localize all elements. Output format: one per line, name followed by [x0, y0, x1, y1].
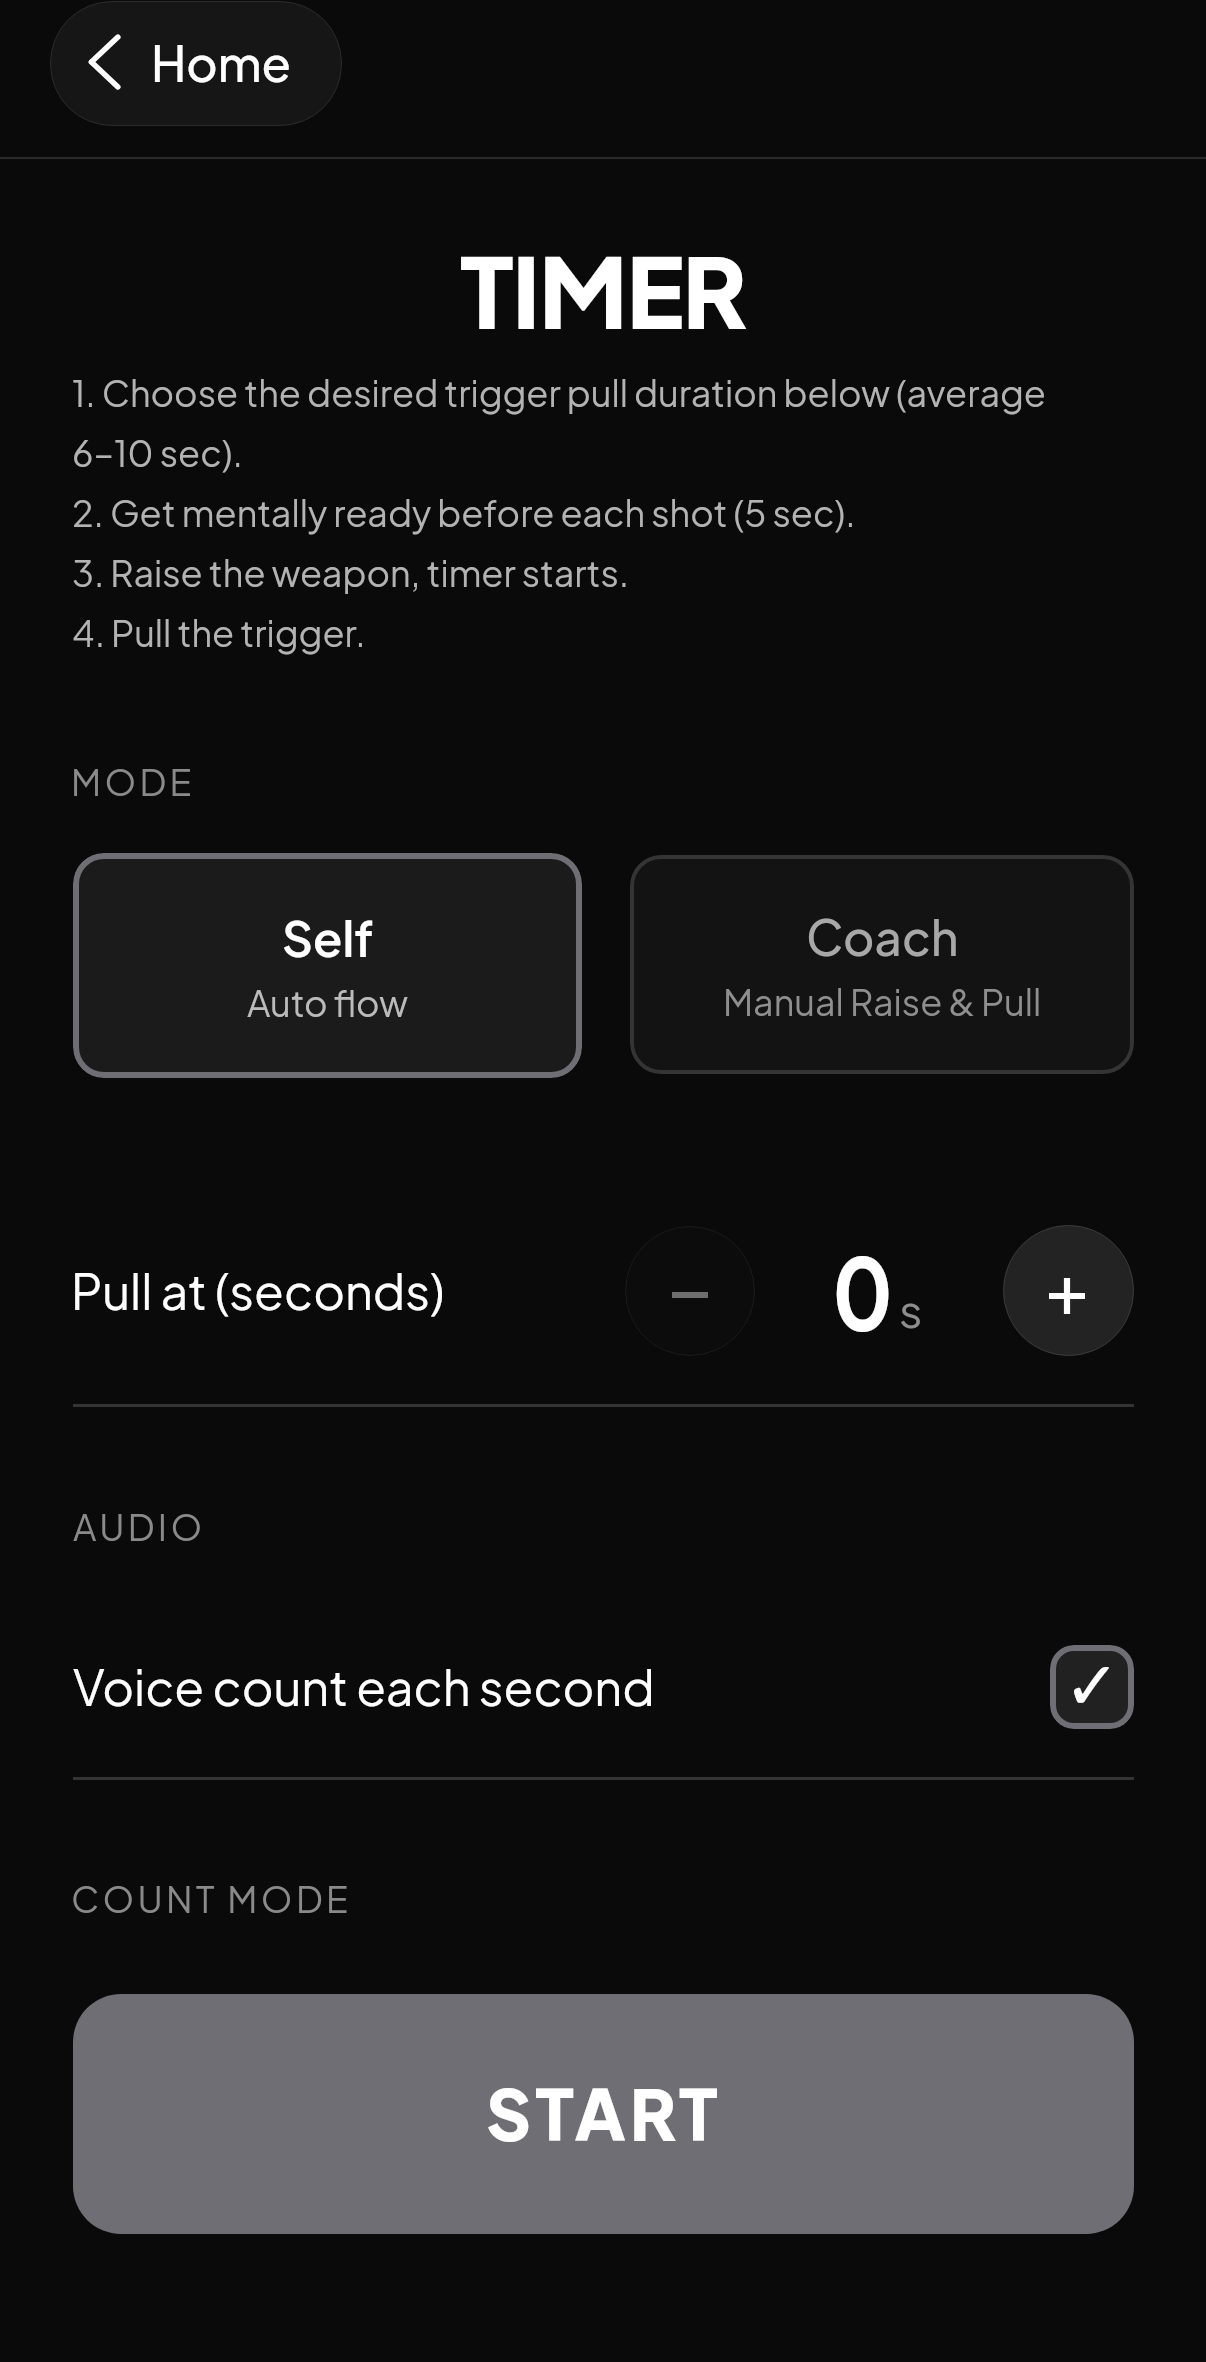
- button[interactable]: Increase: [1003, 1225, 1134, 1356]
- staticText: Home: [151, 32, 291, 92]
- staticText: Pull at (seconds): [71, 1260, 445, 1321]
- staticText: 0: [832, 1229, 894, 1352]
- button[interactable]: Home: [50, 1, 342, 126]
- staticText: ✓: [1064, 1647, 1121, 1725]
- button[interactable]: Voice count each second: [73, 1645, 1134, 1729]
- staticText: START: [486, 2068, 722, 2156]
- staticText: Coach: [806, 906, 959, 966]
- staticText: TIMER: [0, 228, 1206, 350]
- staticText: 1. Choose the desired trigger pull durat…: [72, 370, 1046, 655]
- button[interactable]: Coach: [630, 855, 1134, 1074]
- button[interactable]: Decrease: [625, 1226, 755, 1356]
- staticText: Voice count each second: [73, 1656, 655, 1717]
- button[interactable]: Self: [73, 853, 582, 1078]
- staticText: COUNT MODE: [71, 1876, 352, 1921]
- staticText: s: [899, 1280, 923, 1338]
- button[interactable]: START: [73, 1994, 1134, 2234]
- staticText: AUDIO: [73, 1504, 206, 1549]
- staticText: MODE: [71, 759, 196, 804]
- staticText: Auto flow: [247, 980, 408, 1025]
- staticText: Manual Raise & Pull: [723, 979, 1042, 1024]
- staticText: Self: [282, 907, 374, 967]
